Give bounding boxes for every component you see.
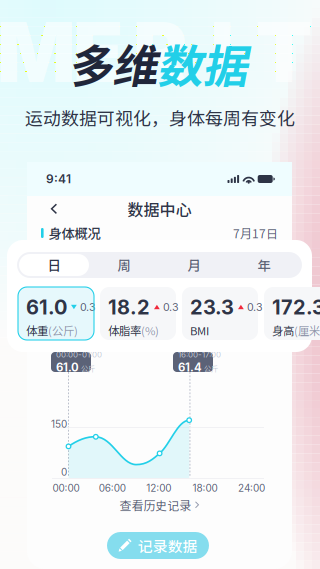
staticText: 记录数据 (138, 535, 198, 556)
staticText: 61.0 (56, 360, 79, 374)
staticText: (厘米) (294, 322, 320, 339)
staticText: 172.3 (272, 295, 320, 319)
staticText: 12:00 (146, 482, 171, 494)
staticText: 61.4 (178, 360, 202, 374)
staticText: T (255, 2, 312, 102)
staticText: 日 (47, 255, 60, 275)
staticText: 数据中心 (127, 197, 191, 221)
button[interactable]: 61.0 (18, 287, 94, 340)
staticText: 身高 (272, 322, 294, 339)
staticText: (公斤) (48, 322, 78, 339)
staticText: M (0, 2, 75, 102)
staticText: 00:00 (52, 482, 79, 494)
staticText: 24:00 (238, 482, 265, 494)
staticText: 月 (187, 255, 200, 275)
staticText: 16:00-17:00 (178, 350, 221, 359)
staticText: 150 (51, 418, 67, 430)
staticText: 公斤 (204, 363, 218, 374)
staticText: 多维 (70, 39, 160, 92)
button[interactable]: 记录数据 (107, 532, 209, 559)
button[interactable]: 172.3 (264, 287, 320, 340)
staticText: 数据 (160, 39, 250, 92)
staticText: 0 (61, 466, 67, 478)
staticText: 周 (117, 255, 130, 275)
staticText: R (132, 2, 187, 102)
staticText: BMI (190, 322, 209, 339)
staticText: 23.3 (190, 295, 234, 319)
staticText: 06:00 (99, 482, 126, 494)
staticText: 9:41 (46, 172, 71, 186)
button[interactable]: 23.3 (182, 287, 258, 340)
staticText: 61.0 (26, 295, 67, 319)
button[interactable]: 日 (19, 254, 89, 276)
staticText: 0.3 (80, 301, 96, 313)
staticText: 7月17日 (233, 224, 278, 242)
staticText: (%) (141, 322, 159, 339)
staticText: 公斤 (81, 363, 95, 374)
staticText: 体重 (26, 322, 48, 339)
button[interactable]: 周 (89, 254, 159, 276)
staticText: 查看历史记录 (119, 496, 191, 514)
staticText: E (72, 2, 123, 102)
staticText: 身体概况 (49, 223, 101, 243)
staticText: 运动数据可视化，身体每周有变化 (25, 104, 295, 131)
staticText: I (210, 2, 234, 102)
staticText: 00:00-01:00 (56, 350, 102, 359)
staticText: 18.2 (108, 295, 150, 319)
staticText: 体脂率 (108, 322, 141, 339)
button[interactable]: 查看历史记录 (27, 496, 292, 514)
staticText: 年 (257, 255, 270, 275)
button[interactable]: 年 (229, 254, 299, 276)
button[interactable]: 月 (159, 254, 229, 276)
button[interactable]: 18.2 (100, 287, 176, 340)
staticText: 0.3 (163, 301, 179, 313)
button[interactable]: 返回 (27, 196, 70, 222)
staticText: 18:00 (192, 482, 217, 494)
staticText: 0.3 (247, 301, 263, 313)
